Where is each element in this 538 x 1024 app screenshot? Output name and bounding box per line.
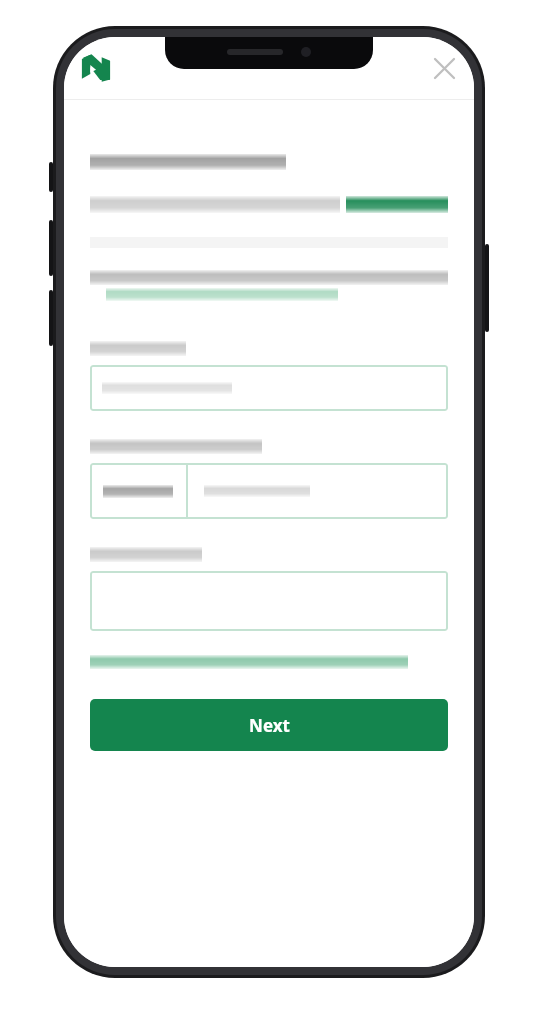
- button[interactable]: Close: [424, 48, 464, 88]
- staticText: Next: [249, 714, 290, 737]
- button[interactable]: Next: [90, 699, 448, 751]
- button[interactable]: [90, 365, 448, 411]
- button[interactable]: Nedbank home: [78, 50, 114, 86]
- button[interactable]: [90, 571, 448, 631]
- button[interactable]: [90, 463, 448, 519]
